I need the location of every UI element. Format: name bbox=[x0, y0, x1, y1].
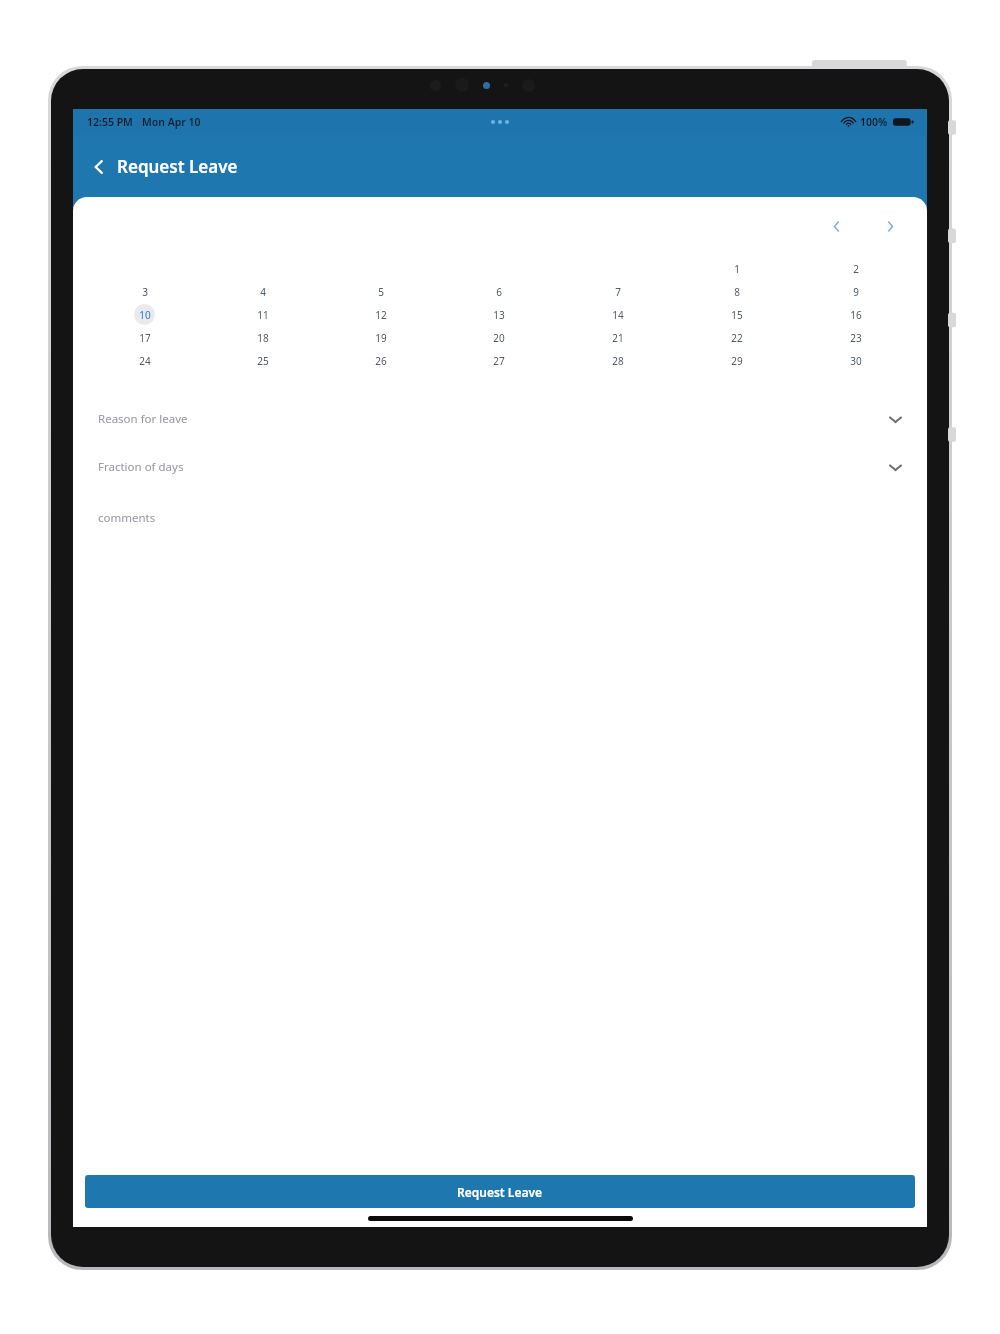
staticText: 17 bbox=[139, 331, 151, 345]
button[interactable]: 21 bbox=[607, 327, 628, 348]
button[interactable]: 24 bbox=[134, 350, 155, 371]
staticText: 16 bbox=[850, 308, 862, 322]
staticText: 1 bbox=[734, 262, 740, 276]
staticText: 25 bbox=[257, 354, 269, 368]
staticText: 26 bbox=[375, 354, 387, 368]
button[interactable]: 11 bbox=[252, 304, 273, 325]
button[interactable]: 22 bbox=[726, 327, 747, 348]
button[interactable]: Back bbox=[83, 149, 244, 184]
staticText: 24 bbox=[139, 354, 151, 368]
staticText: 28 bbox=[612, 354, 624, 368]
button[interactable]: 1 bbox=[726, 258, 747, 279]
staticText: 9 bbox=[853, 285, 859, 299]
button[interactable]: 9 bbox=[845, 281, 866, 302]
button[interactable]: Next month bbox=[879, 215, 901, 237]
staticText: Reason for leave bbox=[98, 411, 889, 427]
staticText: Fraction of days bbox=[98, 459, 889, 475]
button[interactable]: 25 bbox=[252, 350, 273, 371]
staticText: 5 bbox=[378, 285, 384, 299]
staticText: 12:55 PM bbox=[87, 115, 133, 129]
staticText: 30 bbox=[850, 354, 862, 368]
button[interactable]: 6 bbox=[488, 281, 509, 302]
button[interactable]: 10 bbox=[134, 304, 155, 325]
button[interactable]: 30 bbox=[845, 350, 866, 371]
staticText: Request Leave bbox=[117, 155, 238, 178]
staticText: 23 bbox=[850, 331, 862, 345]
button[interactable]: 4 bbox=[252, 281, 273, 302]
staticText: 12 bbox=[375, 308, 387, 322]
other: Back bbox=[89, 157, 109, 177]
button[interactable]: 29 bbox=[726, 350, 747, 371]
button[interactable]: 7 bbox=[607, 281, 628, 302]
staticText: 19 bbox=[375, 331, 387, 345]
button[interactable]: comments bbox=[85, 496, 915, 586]
staticText: 6 bbox=[496, 285, 502, 299]
staticText: Mon Apr 10 bbox=[142, 115, 201, 129]
staticText: 100% bbox=[860, 115, 888, 129]
button[interactable]: 3 bbox=[134, 281, 155, 302]
staticText: 14 bbox=[612, 308, 624, 322]
staticText: Request Leave bbox=[457, 1184, 543, 1200]
staticText: comments bbox=[98, 510, 156, 526]
button[interactable]: 5 bbox=[370, 281, 391, 302]
button[interactable]: 15 bbox=[726, 304, 747, 325]
button[interactable]: 17 bbox=[134, 327, 155, 348]
staticText: 4 bbox=[260, 285, 266, 299]
staticText: 7 bbox=[615, 285, 621, 299]
button[interactable]: 27 bbox=[488, 350, 509, 371]
staticText: 11 bbox=[257, 308, 269, 322]
button[interactable]: 14 bbox=[607, 304, 628, 325]
button[interactable]: 12 bbox=[370, 304, 391, 325]
button[interactable]: 8 bbox=[726, 281, 747, 302]
button[interactable]: 16 bbox=[845, 304, 866, 325]
button[interactable]: 28 bbox=[607, 350, 628, 371]
staticText: 18 bbox=[257, 331, 269, 345]
button[interactable]: 2 bbox=[845, 258, 866, 279]
staticText: 3 bbox=[142, 285, 148, 299]
staticText: 10 bbox=[139, 308, 151, 322]
staticText: 29 bbox=[731, 354, 743, 368]
staticText: 13 bbox=[493, 308, 505, 322]
staticText: 21 bbox=[612, 331, 624, 345]
staticText: 8 bbox=[734, 285, 740, 299]
button[interactable]: Request Leave bbox=[85, 1175, 915, 1208]
button[interactable]: 19 bbox=[370, 327, 391, 348]
staticText: 2 bbox=[853, 262, 859, 276]
button[interactable]: 23 bbox=[845, 327, 866, 348]
staticText: 15 bbox=[731, 308, 743, 322]
staticText: 27 bbox=[493, 354, 505, 368]
button[interactable]: Fraction of days bbox=[85, 448, 915, 486]
button[interactable]: 18 bbox=[252, 327, 273, 348]
staticText: 22 bbox=[731, 331, 743, 345]
button[interactable]: Reason for leave bbox=[85, 400, 915, 438]
button[interactable]: 13 bbox=[488, 304, 509, 325]
staticText: 20 bbox=[493, 331, 505, 345]
button[interactable]: 26 bbox=[370, 350, 391, 371]
button[interactable]: 20 bbox=[488, 327, 509, 348]
button[interactable]: Previous month bbox=[825, 215, 847, 237]
